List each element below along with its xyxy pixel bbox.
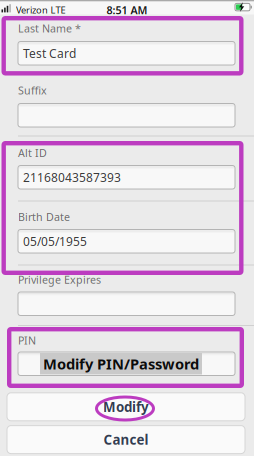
button[interactable]: Cancel (7, 426, 245, 454)
staticText: Modify PIN/Password (43, 354, 199, 373)
staticText: Birth Date (18, 210, 70, 224)
staticText: 21168043587393 (23, 169, 121, 185)
staticText: Last Name * (18, 21, 81, 35)
staticText: Suffix (18, 83, 47, 98)
staticText: Alt ID (18, 146, 47, 160)
staticText: PIN (18, 333, 36, 347)
staticText: Verizon (16, 4, 48, 16)
staticText: 05/05/1955 (23, 233, 87, 249)
staticText: Test Card (23, 45, 76, 61)
button[interactable]: Modify (7, 393, 245, 421)
staticText: Modify (103, 398, 149, 416)
staticText: Cancel (103, 431, 148, 448)
button[interactable]: Modify PIN/Password (18, 352, 235, 375)
staticText: 8:51 AM (106, 3, 147, 17)
staticText: LTE (50, 4, 65, 16)
staticText: Privilege Expires (18, 273, 101, 287)
